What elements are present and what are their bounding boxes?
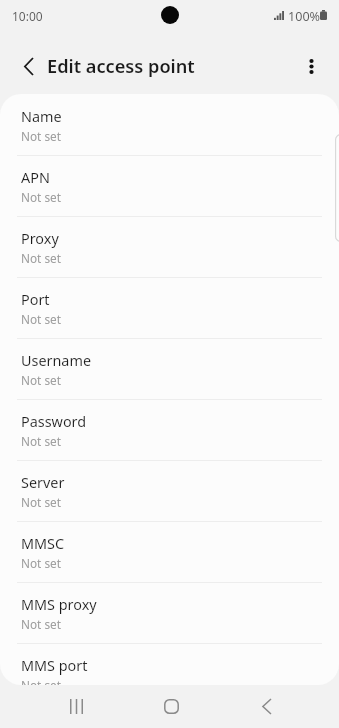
button[interactable]: Navigate up [8, 46, 48, 86]
button[interactable]: Home [148, 683, 194, 728]
staticText: Not set [21, 128, 61, 144]
staticText: Name [21, 107, 62, 127]
staticText: Username [21, 351, 92, 371]
staticText: Not set [21, 494, 61, 510]
staticText: Edit access point [47, 54, 195, 79]
button[interactable]: More options [291, 46, 331, 86]
staticText: Not set [21, 616, 61, 632]
button[interactable]: Password [0, 399, 339, 460]
staticText: Proxy [21, 229, 59, 249]
button[interactable]: Port [0, 277, 339, 338]
staticText: MMS port [21, 656, 88, 676]
button[interactable]: Recents [53, 683, 99, 728]
staticText: APN [21, 168, 50, 188]
button[interactable]: Back [243, 683, 289, 728]
staticText: Not set [21, 555, 61, 571]
staticText: MMSC [21, 534, 65, 554]
button[interactable]: MMS port [0, 643, 339, 685]
staticText: Not set [21, 433, 61, 449]
staticText: Password [21, 412, 87, 432]
staticText: MMS proxy [21, 595, 97, 615]
button[interactable]: MMSC [0, 521, 339, 582]
staticText: 10:00 [12, 8, 43, 24]
button[interactable]: APN [0, 155, 339, 216]
button[interactable]: Proxy [0, 216, 339, 277]
button[interactable]: MMS proxy [0, 582, 339, 643]
staticText: Not set [21, 311, 61, 327]
button[interactable]: Server [0, 460, 339, 521]
staticText: Server [21, 473, 65, 493]
button[interactable]: Username [0, 338, 339, 399]
staticText: 100% [288, 8, 321, 25]
button[interactable]: Name [0, 94, 339, 155]
staticText: Not set [21, 189, 61, 205]
staticText: Port [21, 290, 50, 310]
staticText: Not set [21, 677, 61, 685]
staticText: Not set [21, 372, 61, 388]
staticText: Not set [21, 250, 61, 266]
